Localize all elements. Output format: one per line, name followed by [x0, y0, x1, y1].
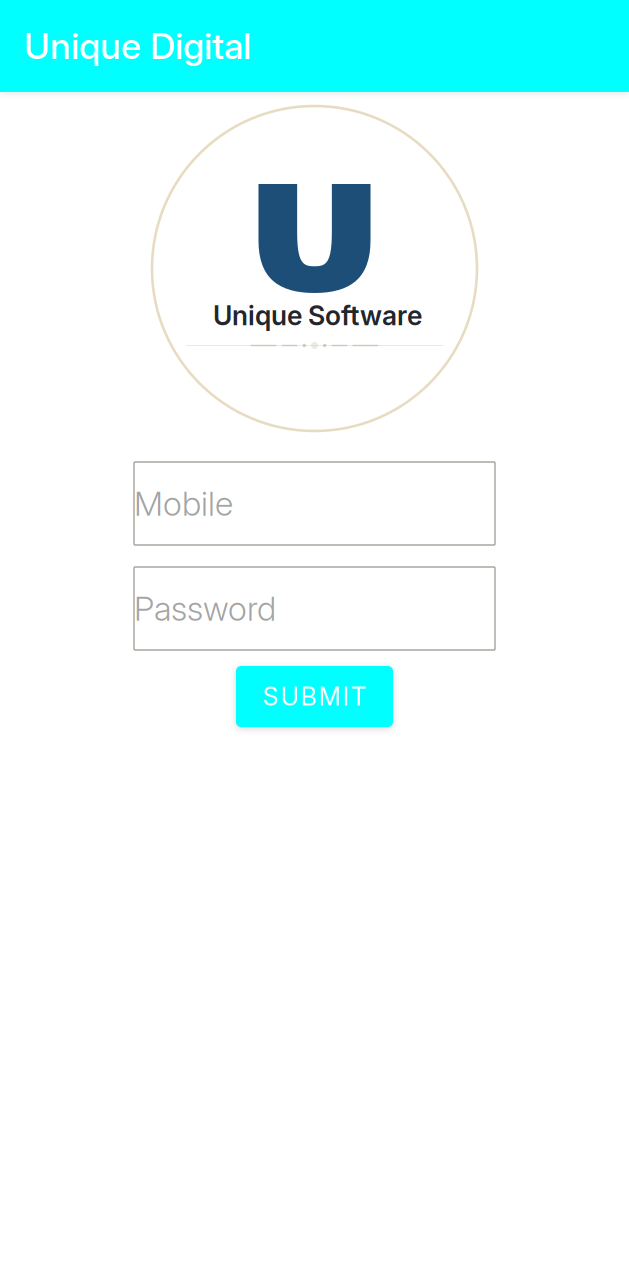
- staticText: Mobile: [134, 483, 233, 524]
- button[interactable]: Password: [134, 567, 495, 650]
- button[interactable]: Mobile: [134, 462, 495, 545]
- button[interactable]: Submit: [236, 666, 393, 727]
- staticText: S U B M I T: [262, 681, 366, 711]
- staticText: Password: [134, 588, 276, 629]
- staticText: Unique Digital: [24, 24, 251, 68]
- staticText: Unique Software: [213, 299, 422, 332]
